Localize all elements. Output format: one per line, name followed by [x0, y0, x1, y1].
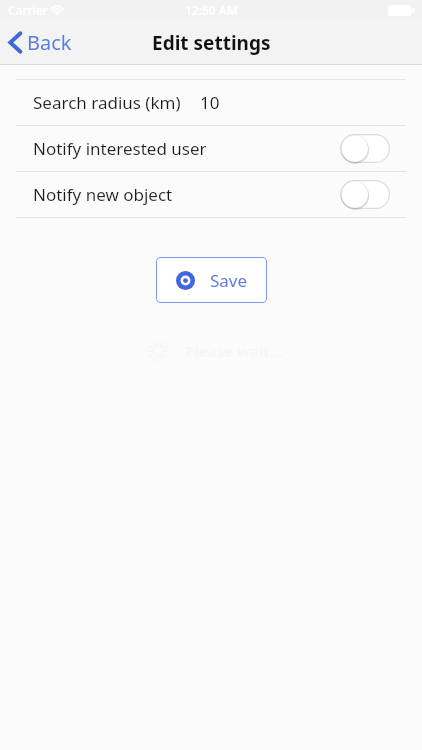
- staticText: Carrier: [8, 2, 48, 18]
- staticText: Edit settings: [152, 30, 271, 56]
- staticText: Notify new object: [33, 183, 340, 206]
- staticText: Notify interested user: [33, 137, 340, 160]
- staticText: 12:50 AM: [185, 2, 238, 18]
- button[interactable]: Save: [156, 257, 267, 303]
- button[interactable]: Toggle: [340, 180, 390, 209]
- staticText: Back: [27, 29, 72, 56]
- button[interactable]: Search radius (km): [0, 80, 422, 125]
- button[interactable]: Notify new object: [0, 172, 422, 217]
- button[interactable]: Back: [0, 20, 84, 65]
- staticText: Save: [210, 269, 248, 292]
- staticText: Search radius (km): [33, 91, 181, 114]
- button[interactable]: Notify interested user: [0, 126, 422, 171]
- staticText: 10: [200, 91, 220, 114]
- button[interactable]: Toggle: [340, 134, 390, 163]
